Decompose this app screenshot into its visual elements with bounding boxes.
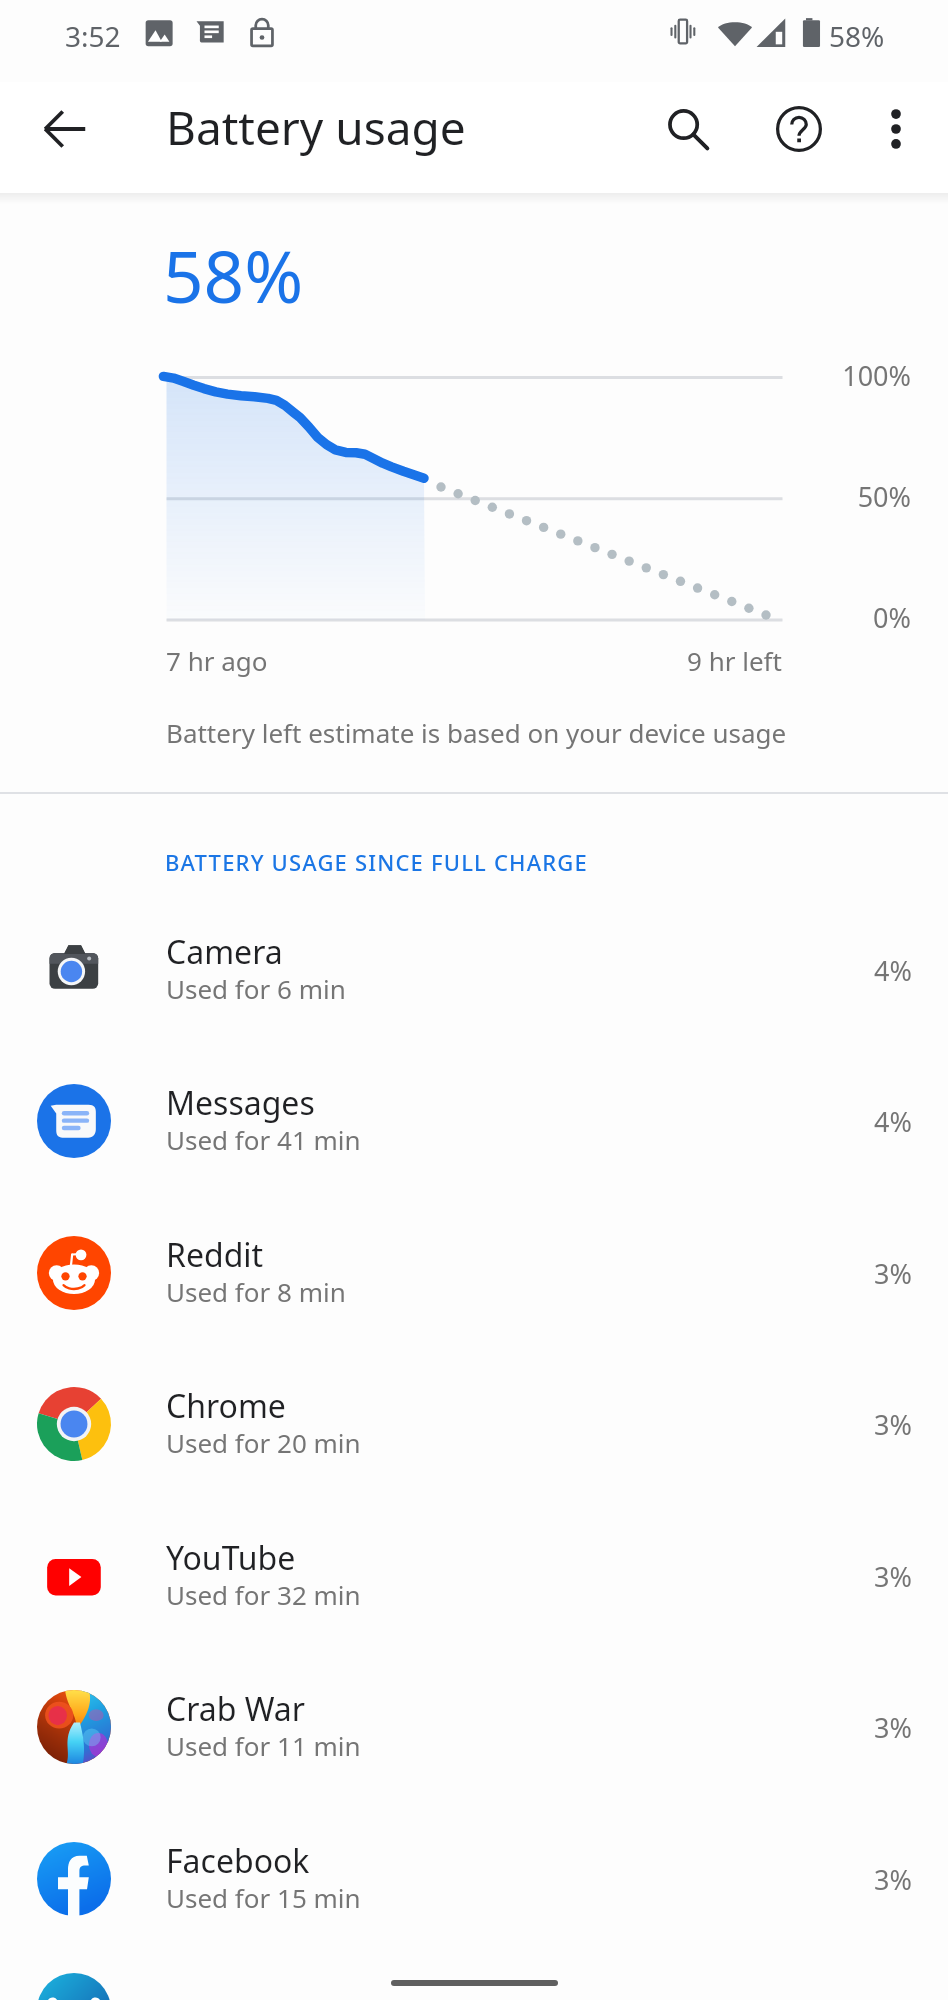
- staticText: 7 hr ago: [166, 643, 268, 678]
- staticText: 3%: [700, 1861, 912, 1898]
- button[interactable]: Crab War: [0, 1663, 948, 1814]
- button[interactable]: Facebook: [0, 1815, 948, 1966]
- staticText: Used for 41 min: [166, 1122, 361, 1157]
- staticText: 3:52: [65, 17, 121, 55]
- button[interactable]: Chrome: [0, 1360, 948, 1511]
- staticText: Chrome: [166, 1384, 286, 1428]
- button[interactable]: Messages: [0, 1057, 948, 1208]
- button[interactable]: YouTube: [0, 1512, 948, 1663]
- staticText: 3%: [700, 1558, 912, 1595]
- staticText: Battery usage: [166, 96, 466, 159]
- staticText: Used for 15 min: [166, 1880, 361, 1915]
- button[interactable]: Help: [754, 84, 844, 174]
- staticText: Camera: [166, 930, 283, 974]
- staticText: 4%: [700, 952, 912, 989]
- staticText: Used for 32 min: [166, 1577, 361, 1612]
- staticText: Used for 8 min: [166, 1274, 346, 1309]
- staticText: 4%: [700, 1103, 912, 1140]
- staticText: 0%: [700, 599, 911, 636]
- staticText: 58%: [829, 17, 885, 55]
- staticText: Battery left estimate is based on your d…: [166, 715, 787, 750]
- staticText: Crab War: [166, 1687, 306, 1731]
- staticText: 58%: [163, 227, 304, 324]
- button[interactable]: Reddit: [0, 1209, 948, 1360]
- staticText: Messages: [166, 1081, 315, 1125]
- staticText: Used for 11 min: [166, 1728, 361, 1763]
- staticText: Used for 6 min: [166, 971, 346, 1006]
- button[interactable]: Search: [643, 84, 733, 174]
- staticText: 3%: [700, 1255, 912, 1292]
- staticText: BATTERY USAGE SINCE FULL CHARGE: [165, 847, 588, 877]
- button[interactable]: Camera: [0, 906, 948, 1057]
- staticText: Reddit: [166, 1233, 264, 1277]
- staticText: Facebook: [166, 1839, 310, 1883]
- staticText: 3%: [700, 1406, 912, 1443]
- staticText: 100%: [700, 357, 911, 394]
- button[interactable]: More options: [851, 84, 941, 174]
- staticText: Used for 20 min: [166, 1425, 361, 1460]
- staticText: 3%: [700, 1709, 912, 1746]
- staticText: YouTube: [166, 1536, 296, 1580]
- button[interactable]: Back: [20, 84, 110, 174]
- staticText: 50%: [700, 478, 911, 515]
- button[interactable]: Maps: [0, 1966, 948, 2000]
- staticText: 9 hr left: [687, 643, 782, 678]
